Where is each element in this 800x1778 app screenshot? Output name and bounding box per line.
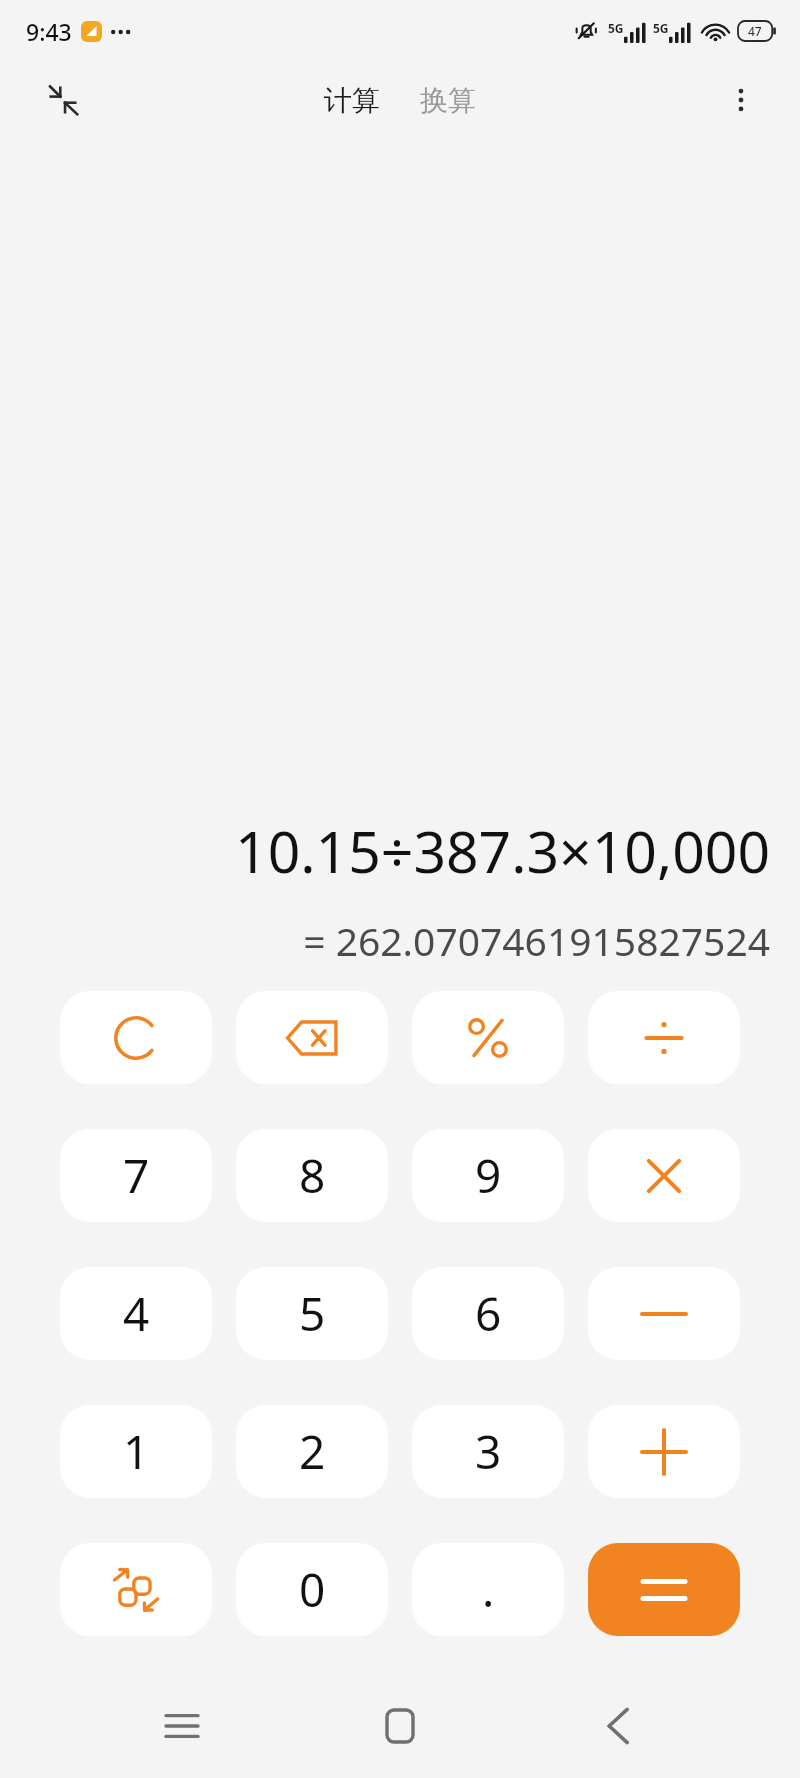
button[interactable]: Convert — [60, 1543, 212, 1636]
staticText: 3 — [475, 1420, 502, 1483]
staticText: = 262.0707461915827524 — [303, 914, 770, 967]
button[interactable]: Divide — [588, 991, 740, 1084]
staticText: 9:43 — [26, 16, 72, 47]
button[interactable]: Collapse — [40, 77, 86, 123]
staticText: 9 — [475, 1144, 502, 1207]
button[interactable]: Multiply — [588, 1129, 740, 1222]
staticText: 5G — [608, 20, 624, 36]
button[interactable]: 1 — [60, 1405, 212, 1498]
staticText: 6 — [475, 1282, 502, 1345]
button[interactable]: Clear — [60, 991, 212, 1084]
button[interactable]: 6 — [412, 1267, 564, 1360]
staticText: 换算 — [420, 83, 476, 118]
staticText: 4 — [123, 1282, 150, 1345]
staticText: 5G — [653, 20, 669, 36]
button[interactable]: Backspace — [236, 991, 388, 1084]
staticText: 7 — [123, 1144, 150, 1207]
button[interactable]: 9 — [412, 1129, 564, 1222]
button[interactable]: Plus — [588, 1405, 740, 1498]
button[interactable]: More options — [718, 77, 764, 123]
staticText: 5 — [299, 1282, 326, 1345]
staticText: 1 — [123, 1420, 150, 1483]
button[interactable]: 4 — [60, 1267, 212, 1360]
button[interactable]: 5 — [236, 1267, 388, 1360]
button[interactable]: 计算 — [318, 77, 386, 124]
button[interactable]: Minus — [588, 1267, 740, 1360]
button[interactable]: Percent — [412, 991, 564, 1084]
button[interactable]: . — [412, 1543, 564, 1636]
button[interactable]: 8 — [236, 1129, 388, 1222]
staticText: 47 — [748, 23, 762, 39]
staticText: 0 — [299, 1558, 326, 1621]
staticText: 8 — [299, 1144, 326, 1207]
button[interactable]: Home — [364, 1690, 436, 1762]
button[interactable]: Equals — [588, 1543, 740, 1636]
staticText: 计算 — [324, 83, 380, 118]
button[interactable]: Recent apps — [146, 1690, 218, 1762]
button[interactable]: Back — [582, 1690, 654, 1762]
button[interactable]: 换算 — [414, 77, 482, 124]
staticText: 2 — [299, 1420, 326, 1483]
button[interactable]: 0 — [236, 1543, 388, 1636]
button[interactable]: 2 — [236, 1405, 388, 1498]
staticText: . — [482, 1558, 495, 1621]
staticText: 10.15÷387.3×10,000 — [235, 812, 770, 890]
button[interactable]: 3 — [412, 1405, 564, 1498]
button[interactable]: 7 — [60, 1129, 212, 1222]
